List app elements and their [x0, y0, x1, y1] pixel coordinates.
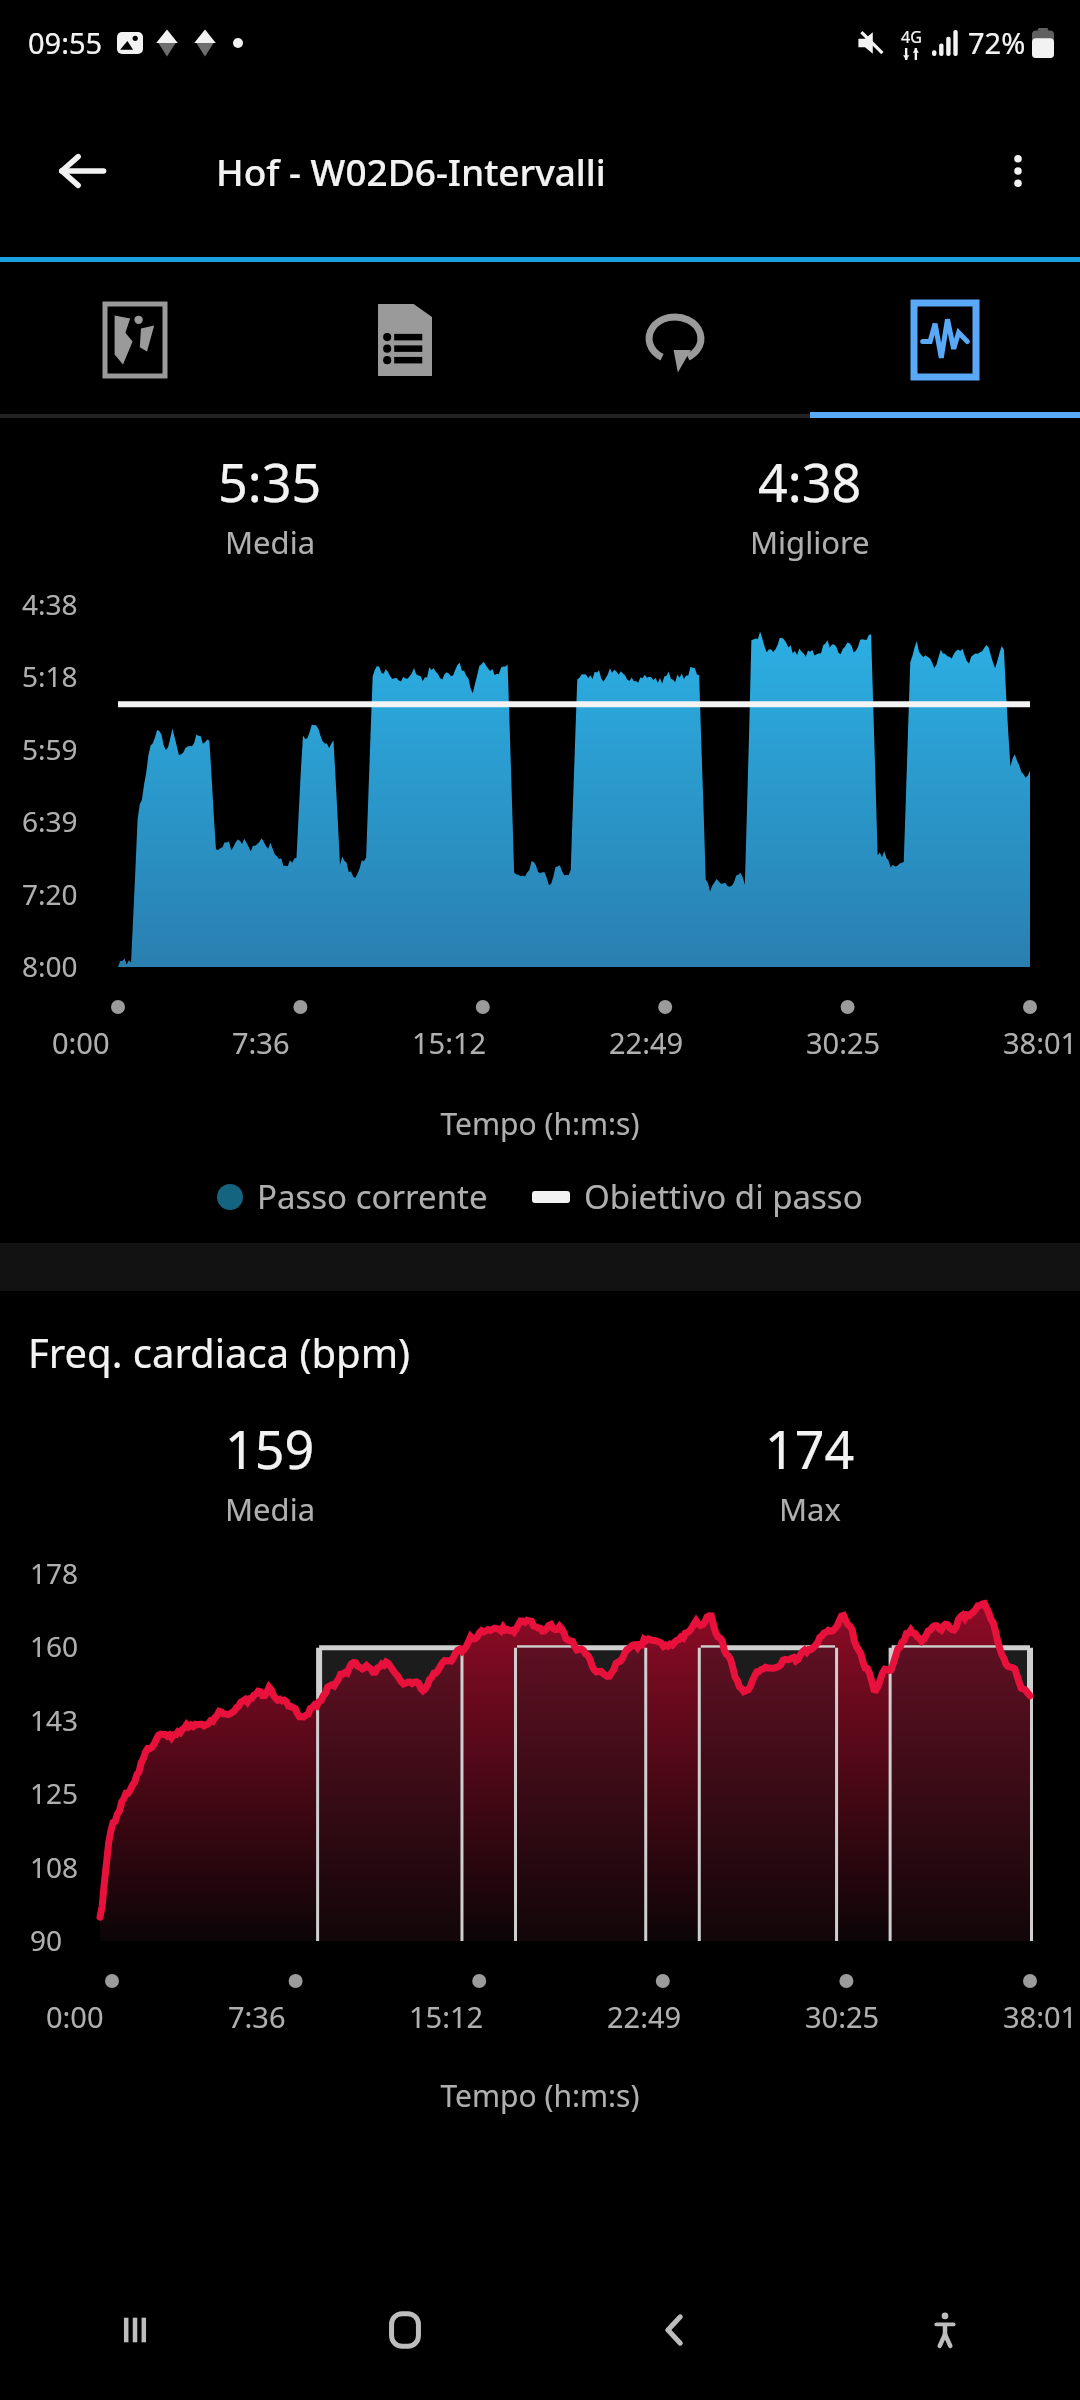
staticText: 160 — [30, 1627, 79, 1665]
staticText: Obiettivo di passo — [584, 1174, 863, 1219]
staticText: 6:39 — [22, 802, 78, 840]
staticText: Hof - W02D6-Intervalli — [216, 146, 606, 196]
button[interactable]: Map — [0, 262, 270, 418]
staticText: 178 — [30, 1554, 79, 1592]
button[interactable]: Details — [270, 262, 540, 418]
staticText: 15:12 — [412, 1023, 487, 1062]
staticText: Tempo (h:m:s) — [0, 1103, 1080, 1144]
staticText: 90 — [30, 1921, 63, 1959]
staticText: 5:59 — [22, 730, 78, 768]
staticText: 0:00 — [46, 1997, 104, 2036]
button[interactable]: Recents — [0, 2260, 270, 2400]
staticText: Freq. cardiaca (bpm) — [28, 1325, 411, 1379]
staticText: 7:36 — [232, 1023, 290, 1062]
staticText: 30:25 — [806, 1023, 881, 1062]
button[interactable]: More options — [976, 129, 1060, 213]
button[interactable]: Back — [42, 131, 122, 211]
staticText: 159 — [225, 1413, 315, 1484]
staticText: 143 — [30, 1701, 79, 1739]
staticText: 5:35 — [218, 446, 322, 517]
button[interactable]: Home — [270, 2260, 540, 2400]
staticText: 4:38 — [22, 585, 78, 623]
staticText: 15:12 — [409, 1997, 484, 2036]
staticText: 7:36 — [228, 1997, 286, 2036]
staticText: Migliore — [750, 521, 870, 563]
staticText: 72% — [968, 23, 1026, 62]
staticText: 09:55 — [28, 23, 103, 62]
staticText: 5:18 — [22, 657, 78, 695]
staticText: Passo corrente — [257, 1174, 488, 1219]
staticText: 174 — [765, 1413, 855, 1484]
staticText: 38:01 — [1003, 1997, 1078, 2036]
button[interactable]: Back — [540, 2260, 810, 2400]
button[interactable]: Accessibility — [810, 2260, 1080, 2400]
staticText: 7:20 — [22, 875, 78, 913]
staticText: 38:01 — [1003, 1023, 1078, 1062]
staticText: 30:25 — [805, 1997, 880, 2036]
staticText: 108 — [30, 1848, 79, 1886]
button[interactable]: Charts — [810, 262, 1080, 418]
staticText: 22:49 — [609, 1023, 684, 1062]
staticText: 22:49 — [607, 1997, 682, 2036]
staticText: 4G — [901, 26, 922, 48]
staticText: 8:00 — [22, 947, 78, 985]
staticText: Tempo (h:m:s) — [0, 2075, 1080, 2116]
staticText: Max — [779, 1488, 841, 1530]
staticText: Media — [225, 1488, 316, 1530]
staticText: Media — [225, 521, 316, 563]
button[interactable]: Laps — [540, 262, 810, 418]
staticText: 125 — [30, 1774, 79, 1812]
staticText: 0:00 — [52, 1023, 110, 1062]
staticText: 4:38 — [758, 446, 862, 517]
